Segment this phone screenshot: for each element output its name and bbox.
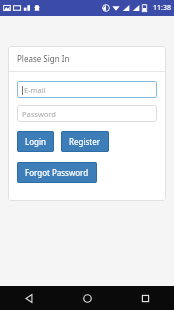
button[interactable]: Back	[0, 286, 58, 310]
button[interactable]: Register	[61, 131, 109, 152]
button[interactable]: Recent apps	[116, 286, 174, 310]
staticText: Register	[69, 136, 101, 147]
button[interactable]: Home	[58, 286, 116, 310]
staticText: Forgot Password	[25, 167, 89, 178]
staticText: Please Sign In	[17, 53, 70, 64]
button[interactable]: E-mail	[17, 81, 157, 98]
button[interactable]: Password	[17, 105, 157, 122]
staticText: Password	[22, 109, 56, 119]
staticText: Login	[25, 136, 46, 147]
staticText: E-mail	[24, 85, 46, 95]
staticText: 11:38	[153, 3, 171, 13]
button[interactable]: Login	[17, 131, 54, 152]
button[interactable]: Forgot Password	[17, 162, 97, 183]
